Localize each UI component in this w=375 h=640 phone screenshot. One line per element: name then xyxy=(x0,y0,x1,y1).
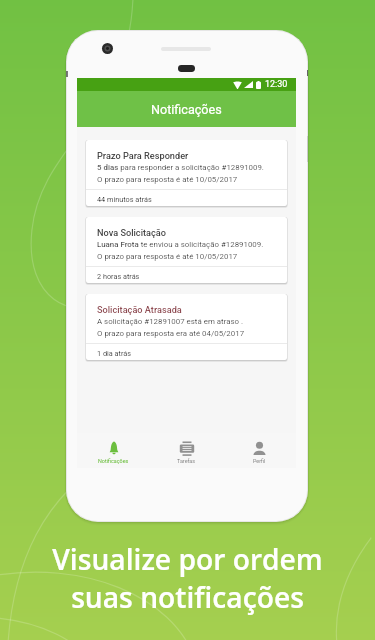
button[interactable]: Tarefas xyxy=(150,433,223,468)
staticText: O prazo para resposta era até 04/05/2017 xyxy=(97,329,245,338)
button[interactable]: Perfil xyxy=(223,433,296,468)
staticText: O prazo para resposta é até 10/05/2017 xyxy=(97,252,238,261)
button[interactable]: Solicitação Atrasada xyxy=(86,294,287,360)
staticText: Perfil xyxy=(253,458,266,464)
staticText: 2 horas atrás xyxy=(97,272,140,281)
staticText: A solicitação #12891007 está em atraso . xyxy=(97,317,244,326)
staticText: O prazo para resposta é até 10/05/2017 xyxy=(97,175,238,184)
staticText: Tarefas xyxy=(177,458,196,464)
staticText: 1 dia atrás xyxy=(97,349,132,358)
button[interactable]: Prazo Para Responder xyxy=(86,140,287,206)
staticText: Notificações xyxy=(151,102,222,117)
staticText: Solicitação Atrasada xyxy=(97,304,182,315)
button[interactable]: Notificações xyxy=(77,433,150,468)
staticText: suas notificações xyxy=(0,578,375,616)
staticText: Prazo Para Responder xyxy=(97,150,189,161)
button[interactable]: Nova Solicitação xyxy=(86,217,287,283)
staticText: Visualize por ordem xyxy=(0,540,375,578)
staticText: 12:30 xyxy=(265,79,288,90)
staticText: Nova Solicitação xyxy=(97,227,166,238)
staticText: 5 dias para responder a solicitação #128… xyxy=(97,163,264,172)
staticText: Luana Frota te enviou a solicitação #128… xyxy=(97,240,264,249)
staticText: Notificações xyxy=(98,458,129,464)
staticText: 44 minutos atrás xyxy=(97,195,152,204)
